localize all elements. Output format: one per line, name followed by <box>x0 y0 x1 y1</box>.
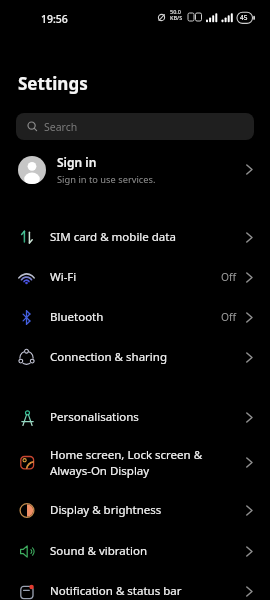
button[interactable]: Wi-Fi <box>0 257 270 297</box>
staticText: Bluetooth <box>50 309 104 325</box>
button[interactable]: Personalisations <box>0 397 270 437</box>
staticText: Wi-Fi <box>50 269 77 285</box>
button[interactable]: SIM card & mobile data <box>0 217 270 257</box>
staticText: SIM card & mobile data <box>50 229 176 245</box>
staticText: 50.0 <box>170 8 181 15</box>
staticText: Connection & sharing <box>50 349 167 365</box>
staticText: Search <box>44 120 78 134</box>
staticText: Sound & vibration <box>50 543 147 559</box>
staticText: Display & brightness <box>50 502 162 518</box>
button[interactable]: Connection & sharing <box>0 337 270 377</box>
staticText: Off <box>221 270 237 284</box>
staticText: 19:56 <box>41 12 68 26</box>
staticText: Sign in to use services. <box>57 173 156 186</box>
staticText: Personalisations <box>50 409 139 425</box>
button[interactable]: Bluetooth <box>0 297 270 337</box>
button[interactable]: Sign in <box>0 144 270 195</box>
button[interactable]: Search <box>16 113 254 140</box>
staticText: Off <box>221 310 237 324</box>
staticText: Settings <box>18 72 88 95</box>
staticText: Notification & status bar <box>50 583 182 599</box>
button[interactable]: Sound & vibration <box>0 531 270 571</box>
staticText: Home screen, Lock screen & Always-On Dis… <box>50 447 203 479</box>
button[interactable]: Home screen, Lock screen & Always-On Dis… <box>0 437 270 488</box>
staticText: 45 <box>240 13 248 22</box>
button[interactable]: Display & brightness <box>0 490 270 530</box>
staticText: KB/S <box>170 14 183 21</box>
staticText: Sign in <box>57 154 97 170</box>
button[interactable]: Notification & status bar <box>0 571 270 600</box>
